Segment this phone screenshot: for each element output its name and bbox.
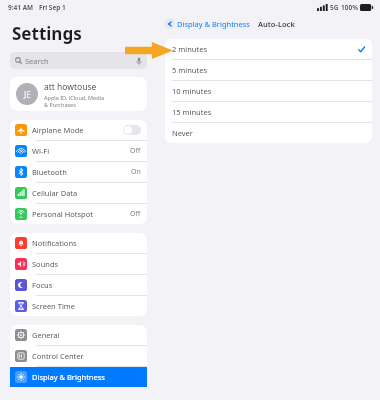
staticText: Wi-Fi	[32, 146, 130, 156]
staticText: Apple ID, iCloud, Media	[44, 94, 105, 101]
staticText: Display & Brightness	[32, 372, 141, 382]
button[interactable]: 15 minutes	[165, 102, 372, 122]
button[interactable]: Sounds	[10, 254, 147, 274]
staticText: On	[131, 167, 141, 177]
staticText: Display & Brightness	[177, 19, 250, 29]
staticText: Off	[130, 146, 141, 156]
staticText: att howtouse	[44, 81, 97, 93]
staticText: Auto-Lock	[258, 19, 295, 29]
staticText: 15 minutes	[172, 107, 365, 117]
staticText: Screen Time	[32, 301, 141, 311]
staticText: 5G	[330, 3, 339, 12]
staticText: Sounds	[32, 259, 141, 269]
button[interactable]: 5 minutes	[165, 60, 372, 80]
button[interactable]: Screen Time	[10, 296, 147, 316]
staticText: JE	[24, 89, 31, 100]
button[interactable]: Cellular Data	[10, 183, 147, 203]
button[interactable]: 10 minutes	[165, 81, 372, 101]
staticText: Fri Sep 1	[39, 3, 66, 12]
staticText: Control Center	[32, 351, 141, 361]
button[interactable]: Display & Brightness	[10, 367, 147, 387]
button[interactable]: 2 minutes	[165, 39, 372, 59]
button[interactable]: General	[10, 325, 147, 345]
staticText: Bluetooth	[32, 167, 131, 177]
staticText: 2 minutes	[172, 44, 358, 54]
staticText: Focus	[32, 280, 141, 290]
button[interactable]: Airplane Mode	[10, 120, 147, 140]
button[interactable]: Never	[165, 123, 372, 143]
staticText: General	[32, 330, 141, 340]
button[interactable]: Back to Display & Brightness	[164, 18, 250, 29]
button[interactable]: Wi-Fi	[10, 141, 147, 161]
staticText: Cellular Data	[32, 188, 141, 198]
staticText: Personal Hotspot	[32, 209, 130, 219]
button[interactable]: Search	[10, 52, 147, 69]
staticText: & Purchases	[44, 101, 76, 108]
button[interactable]: Bluetooth	[10, 162, 147, 182]
button[interactable]: Notifications	[10, 233, 147, 253]
staticText: 5 minutes	[172, 65, 365, 75]
staticText: Settings	[12, 22, 82, 45]
button[interactable]: Control Center	[10, 346, 147, 366]
staticText: Airplane Mode	[32, 125, 123, 135]
staticText: Notifications	[32, 238, 141, 248]
staticText: 10 minutes	[172, 86, 365, 96]
button[interactable]: Personal Hotspot	[10, 204, 147, 224]
staticText: Off	[130, 209, 141, 219]
staticText: Search	[25, 56, 49, 66]
staticText: Never	[172, 128, 365, 138]
staticText: 9:41 AM	[8, 3, 34, 12]
button[interactable]: Focus	[10, 275, 147, 295]
button[interactable]: JE	[10, 77, 147, 111]
staticText: 100%	[341, 3, 358, 12]
